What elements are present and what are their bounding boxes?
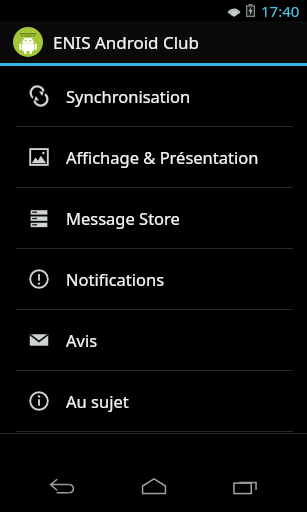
staticText: Affichage & Présentation — [66, 146, 259, 168]
button[interactable]: Synchronisation — [0, 66, 307, 126]
button[interactable]: Au sujet — [0, 371, 307, 431]
staticText: Message Store — [66, 207, 180, 229]
button[interactable]: Message Store — [0, 188, 307, 248]
button[interactable]: Back — [33, 464, 91, 508]
button[interactable]: Notifications — [0, 249, 307, 309]
staticText: 17:40 — [261, 1, 300, 21]
staticText: Avis — [66, 329, 98, 351]
staticText: ENIS Android Club — [53, 31, 200, 54]
button[interactable]: Avis — [0, 310, 307, 370]
button[interactable]: Home — [125, 464, 183, 508]
staticText: Synchronisation — [66, 85, 191, 107]
staticText: Notifications — [66, 268, 165, 290]
button[interactable]: ENIS Android Club — [0, 21, 307, 63]
button[interactable]: Recent apps — [216, 464, 274, 508]
staticText: Au sujet — [66, 390, 129, 412]
button[interactable]: Affichage & Présentation — [0, 127, 307, 187]
